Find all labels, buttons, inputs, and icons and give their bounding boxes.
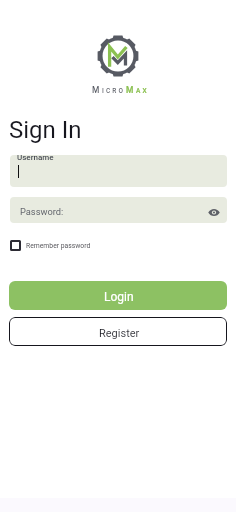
button[interactable]: Register bbox=[9, 317, 227, 346]
staticText: ICRO bbox=[102, 87, 126, 95]
staticText: Username bbox=[17, 155, 54, 162]
staticText: Login bbox=[104, 290, 134, 304]
staticText: Password: bbox=[20, 206, 64, 217]
button[interactable]: Username bbox=[10, 155, 227, 187]
button[interactable]: Password: bbox=[10, 197, 227, 223]
button[interactable]: Show password bbox=[206, 204, 222, 220]
staticText: M bbox=[92, 85, 102, 95]
staticText: Sign In bbox=[9, 116, 82, 144]
staticText: Register bbox=[99, 327, 140, 340]
button[interactable]: Remember password bbox=[10, 240, 91, 251]
button[interactable]: Login bbox=[9, 281, 227, 310]
staticText: AX bbox=[136, 87, 149, 95]
staticText: Remember password bbox=[26, 242, 91, 250]
staticText: M bbox=[126, 85, 136, 95]
